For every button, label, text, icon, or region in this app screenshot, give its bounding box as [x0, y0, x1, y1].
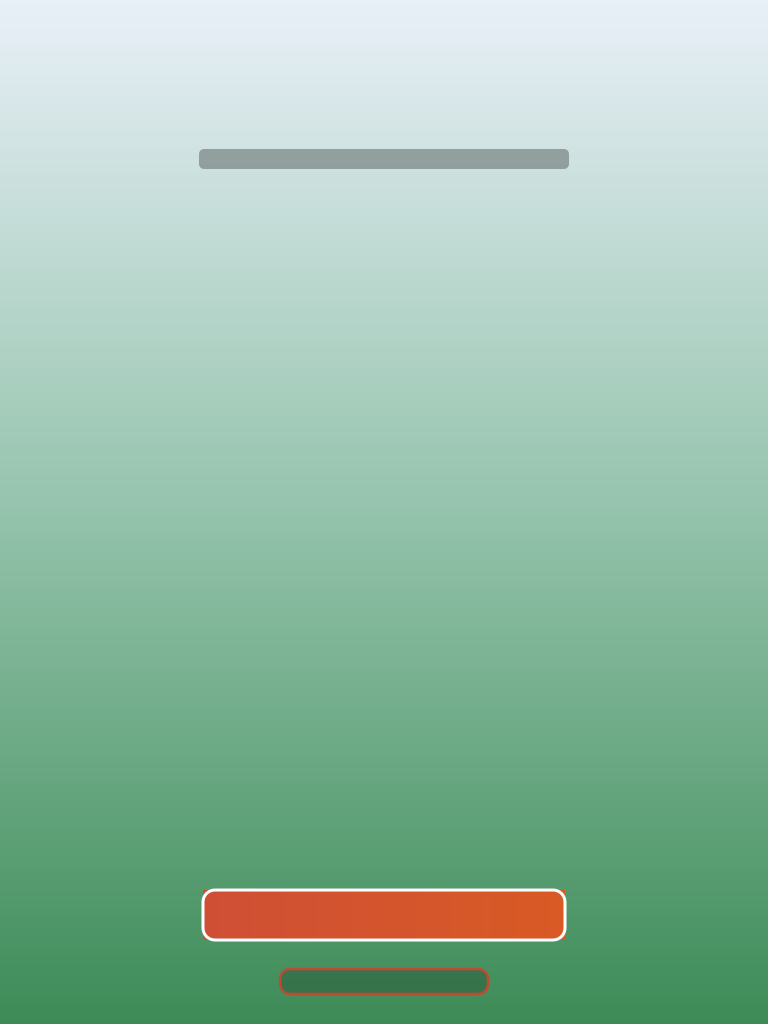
- button[interactable]: More options: [280, 969, 488, 994]
- button[interactable]: Continue: [203, 890, 565, 940]
